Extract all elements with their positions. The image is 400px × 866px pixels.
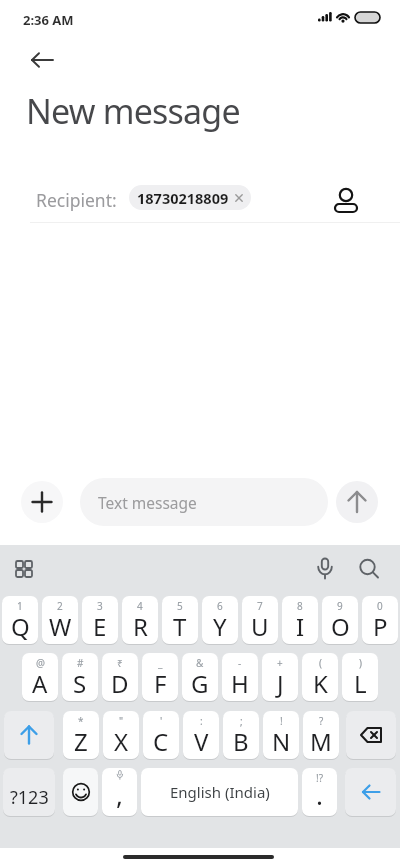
staticText: & [196, 656, 204, 670]
button[interactable]: 6 [202, 596, 238, 644]
button[interactable]: English (India) [141, 768, 298, 816]
staticText: J [277, 667, 284, 700]
staticText: . [316, 777, 323, 812]
staticText: - [238, 656, 242, 670]
button[interactable] [21, 481, 63, 523]
staticText: " [119, 714, 124, 728]
staticText: ? [319, 714, 324, 728]
button[interactable]: 9 [322, 596, 358, 644]
button[interactable]: 5 [162, 596, 198, 644]
staticText: Recipient: [36, 188, 117, 212]
button[interactable] [345, 768, 396, 816]
staticText: L [354, 667, 367, 700]
staticText: I [296, 610, 305, 643]
button[interactable] [356, 556, 382, 582]
staticText: D [111, 667, 129, 700]
staticText: E [93, 610, 107, 643]
staticText: @ [36, 656, 45, 670]
button[interactable]: " [103, 711, 139, 759]
staticText: P [373, 610, 388, 643]
staticText: F [154, 667, 167, 700]
button[interactable]: 4 [122, 596, 158, 644]
staticText: A [32, 667, 48, 700]
staticText: 9 [337, 599, 343, 613]
button[interactable]: 2 [42, 596, 78, 644]
staticText: ?123 [10, 785, 49, 810]
staticText: 7 [257, 599, 263, 613]
button[interactable]: - [222, 653, 258, 701]
staticText: Y [213, 610, 227, 643]
staticText: ; [240, 714, 243, 728]
staticText: S [73, 667, 87, 700]
staticText: English (India) [170, 782, 270, 802]
button[interactable]: & [182, 653, 218, 701]
staticText: H [231, 667, 249, 700]
staticText: 2 [57, 599, 63, 613]
button[interactable]: ' [143, 711, 179, 759]
staticText: 0 [377, 599, 383, 613]
staticText: New message [26, 88, 240, 134]
staticText: Q [11, 610, 30, 643]
staticText: ! [280, 714, 283, 728]
button[interactable] [336, 481, 378, 523]
button[interactable] [22, 45, 62, 77]
button[interactable] [12, 559, 38, 581]
staticText: N [272, 725, 291, 758]
staticText: B [233, 725, 249, 758]
button[interactable]: # [62, 653, 98, 701]
staticText: 1 [17, 599, 23, 613]
button[interactable]: 18730218809 [129, 185, 251, 210]
button[interactable]: 8 [282, 596, 318, 644]
staticText: Z [74, 725, 88, 758]
button[interactable]: _ [142, 653, 178, 701]
button[interactable]: 7 [242, 596, 278, 644]
button[interactable] [346, 711, 396, 759]
staticText: ₹ [117, 656, 123, 670]
staticText: 5 [177, 599, 183, 613]
staticText: ) [359, 656, 362, 670]
staticText: G [191, 667, 209, 700]
button[interactable]: ( [302, 653, 338, 701]
button[interactable]: @ [22, 653, 58, 701]
staticText: * [78, 714, 84, 728]
staticText: 8 [297, 599, 303, 613]
staticText: T [173, 610, 187, 643]
button[interactable] [63, 768, 98, 816]
staticText: 3 [97, 599, 103, 613]
staticText: ' [160, 714, 163, 728]
button[interactable]: ₹ [102, 653, 138, 701]
staticText: ( [319, 656, 322, 670]
staticText: U [251, 610, 269, 643]
button[interactable]: !? [302, 768, 337, 816]
button[interactable]: ?123 [3, 768, 55, 816]
button[interactable]: Text message [80, 478, 328, 526]
button[interactable]: ; [223, 711, 259, 759]
button[interactable]: * [63, 711, 99, 759]
staticText: # [77, 656, 84, 670]
staticText: X [114, 725, 129, 758]
button[interactable]: 0 [362, 596, 398, 644]
staticText: R [133, 610, 148, 643]
button[interactable] [312, 556, 338, 582]
staticText: V [194, 725, 209, 758]
button[interactable]: : [183, 711, 219, 759]
button[interactable]: , [102, 768, 137, 816]
staticText: , [116, 777, 123, 812]
button[interactable]: 1 [2, 596, 38, 644]
button[interactable]: ? [303, 711, 339, 759]
staticText: !? [316, 771, 324, 785]
button[interactable]: 3 [82, 596, 118, 644]
button[interactable]: ) [342, 653, 378, 701]
button[interactable] [4, 711, 54, 759]
staticText: _ [158, 656, 163, 670]
staticText: C [153, 725, 169, 758]
staticText: O [331, 610, 350, 643]
staticText: 6 [217, 599, 223, 613]
button[interactable]: ! [263, 711, 299, 759]
staticText: W [49, 610, 72, 643]
button[interactable] [330, 184, 362, 216]
button[interactable]: + [262, 653, 298, 701]
staticText: M [310, 725, 332, 758]
staticText: Text message [98, 492, 197, 513]
staticText: + [277, 656, 283, 670]
